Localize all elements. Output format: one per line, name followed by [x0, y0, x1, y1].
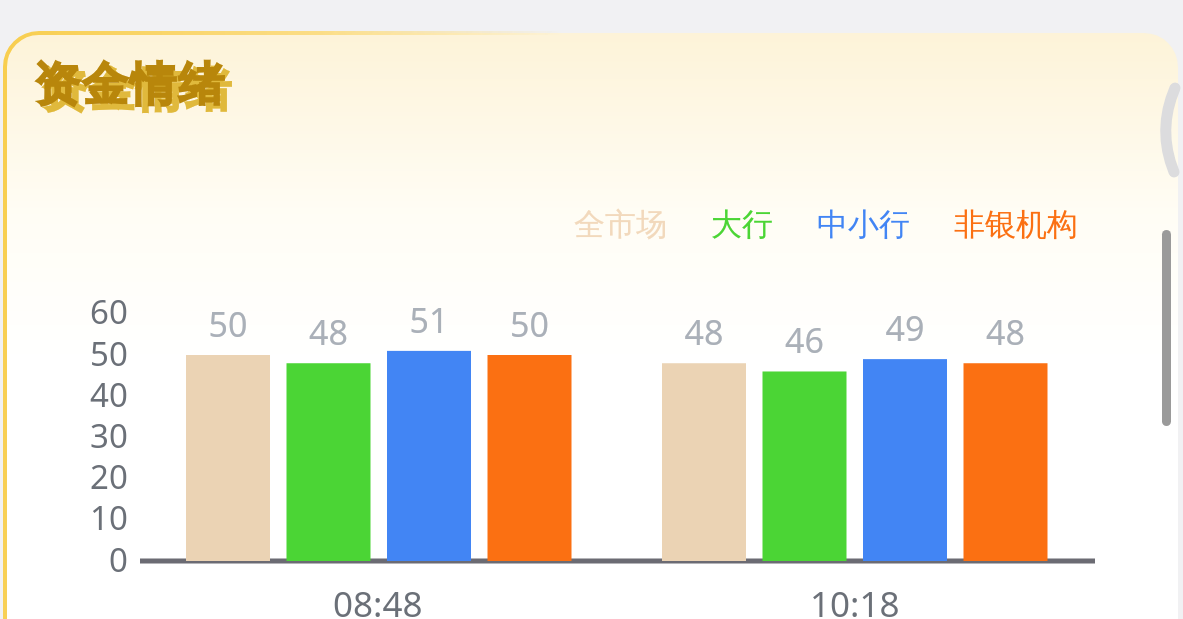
- button[interactable]: 资金情绪 chart card: [0, 0, 1183, 619]
